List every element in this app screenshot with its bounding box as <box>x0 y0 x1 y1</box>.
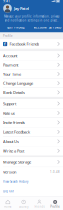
button[interactable]: Manage Storage <box>0 157 63 167</box>
staticText: ACCOUNT SETTINGS <box>34 26 61 29</box>
button[interactable]: Your Time <box>0 70 63 78</box>
button[interactable]: Support <box>0 99 63 108</box>
staticText: Invite friends <box>3 120 25 125</box>
staticText: Facebook Friends <box>9 41 39 47</box>
staticText: Bank Details <box>3 90 25 95</box>
button[interactable]: Latest Feedback <box>0 127 63 137</box>
button[interactable]: View Search History <box>0 177 63 186</box>
staticText: Home <box>4 205 12 208</box>
staticText: EDIT PROFILE <box>7 26 24 29</box>
staticText: Rate us <box>3 110 15 116</box>
staticText: Manage Storage <box>3 159 31 165</box>
staticText: Account <box>3 53 17 58</box>
button[interactable]: EDIT PROFILE <box>0 25 31 30</box>
button[interactable]: Write a Post <box>0 146 63 155</box>
staticText: View Search History <box>3 180 28 183</box>
staticText: Change Language <box>3 81 33 86</box>
button[interactable]: Friends <box>31 198 47 210</box>
staticText: f <box>4 41 6 46</box>
staticText: Payment <box>3 62 18 67</box>
staticText: Activity <box>19 205 28 208</box>
button[interactable]: Payment <box>0 60 63 69</box>
staticText: Jay Patel <box>14 6 29 11</box>
button[interactable]: f <box>0 39 63 49</box>
button[interactable]: Invite friends <box>0 118 63 127</box>
staticText: Profile <box>50 205 60 208</box>
staticText: Latest Feedback <box>3 129 30 135</box>
button[interactable]: Bank Details <box>0 88 63 97</box>
staticText: Profile <box>3 34 13 38</box>
button[interactable]: Rate us <box>0 109 63 118</box>
staticText: About Us <box>3 139 19 144</box>
staticText: 9:41 <box>3 0 10 3</box>
staticText: and notification settings in one place. <box>4 19 58 22</box>
button[interactable]: Activity <box>16 198 32 210</box>
staticText: Friends <box>34 205 44 208</box>
button[interactable]: Profile <box>47 198 63 210</box>
staticText: Manage your profile information, privacy <box>4 15 59 18</box>
staticText: Support <box>3 101 16 106</box>
button[interactable]: Home <box>0 198 16 210</box>
button[interactable]: About Us <box>0 137 63 146</box>
staticText: Log Out <box>3 189 14 193</box>
staticText: 1.0.48 <box>50 170 60 174</box>
button[interactable]: ACCOUNT SETTINGS <box>31 25 63 30</box>
button[interactable]: Log Out <box>0 186 63 196</box>
staticText: Version <box>3 169 16 175</box>
staticText: Your Time <box>3 71 21 77</box>
staticText: Write a Post <box>3 148 24 153</box>
button[interactable]: Change Language <box>0 79 63 88</box>
button[interactable]: Version <box>0 167 63 177</box>
button[interactable]: Account <box>0 51 63 60</box>
